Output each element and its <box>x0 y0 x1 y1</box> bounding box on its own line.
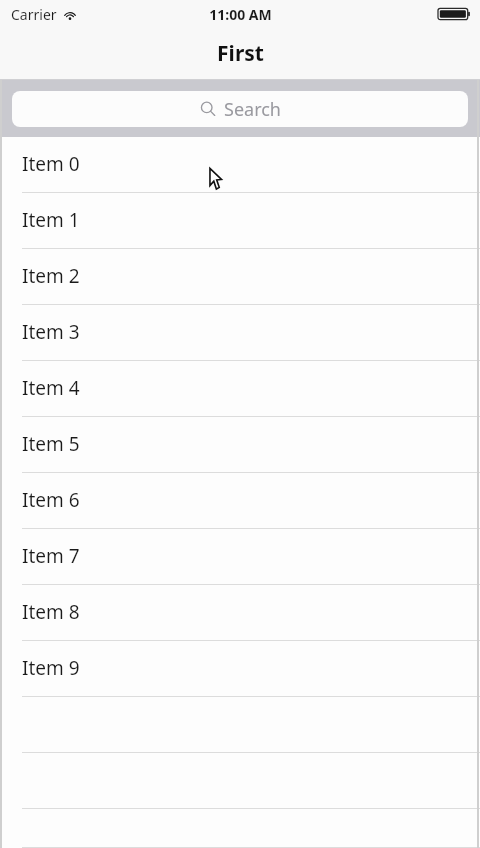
button[interactable]: Item 0 <box>0 137 480 193</box>
staticText: Item 7 <box>22 543 80 569</box>
button[interactable]: Item 5 <box>0 417 480 473</box>
button[interactable]: Item 6 <box>0 473 480 529</box>
button[interactable]: Item 4 <box>0 361 480 417</box>
staticText: Item 3 <box>22 319 80 345</box>
staticText: Item 5 <box>22 431 80 457</box>
button[interactable]: Item 2 <box>0 249 480 305</box>
staticText: Item 9 <box>22 655 80 681</box>
staticText: Item 0 <box>22 151 80 177</box>
button[interactable]: Item 9 <box>0 641 480 697</box>
button[interactable]: Item 7 <box>0 529 480 585</box>
staticText: Carrier <box>11 5 57 24</box>
staticText: Item 2 <box>22 263 80 289</box>
staticText: Item 8 <box>22 599 80 625</box>
staticText: Item 4 <box>22 375 80 401</box>
button[interactable]: Item 3 <box>0 305 480 361</box>
staticText: Item 6 <box>22 487 80 513</box>
button[interactable]: Item 8 <box>0 585 480 641</box>
staticText: Item 1 <box>22 207 80 233</box>
button[interactable]: Search <box>12 91 468 127</box>
staticText: Search <box>224 97 281 122</box>
button[interactable]: Item 1 <box>0 193 480 249</box>
staticText: 11:00 AM <box>209 5 272 24</box>
staticText: First <box>217 39 264 68</box>
